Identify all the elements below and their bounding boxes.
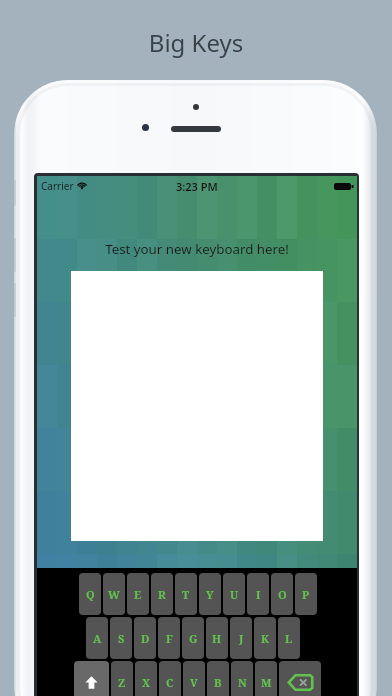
button[interactable]: W: [103, 573, 125, 615]
staticText: W: [108, 587, 120, 602]
button[interactable]: D: [134, 617, 156, 659]
button[interactable]: F: [158, 617, 180, 659]
staticText: R: [158, 587, 166, 602]
staticText: Y: [206, 587, 214, 602]
staticText: L: [285, 631, 293, 646]
staticText: H: [212, 631, 222, 646]
button[interactable]: J: [230, 617, 252, 659]
staticText: P: [302, 587, 310, 602]
staticText: O: [278, 587, 287, 602]
button[interactable]: X: [135, 661, 157, 696]
staticText: S: [118, 631, 125, 646]
staticText: 3:23 PM: [176, 179, 218, 194]
staticText: U: [230, 587, 239, 602]
staticText: Big Keys: [0, 26, 392, 59]
button[interactable]: N: [231, 661, 253, 696]
staticText: J: [239, 631, 244, 646]
button[interactable]: M: [255, 661, 277, 696]
button[interactable]: Z: [111, 661, 133, 696]
button[interactable]: O: [271, 573, 293, 615]
button[interactable]: Q: [79, 573, 101, 615]
button[interactable]: K: [254, 617, 276, 659]
button[interactable]: A: [86, 617, 108, 659]
staticText: D: [141, 631, 150, 646]
staticText: Z: [118, 675, 126, 690]
button[interactable]: V: [183, 661, 205, 696]
staticText: V: [190, 675, 198, 690]
button[interactable]: Shift: [74, 661, 109, 696]
button[interactable]: I: [247, 573, 269, 615]
staticText: A: [93, 631, 102, 646]
staticText: Q: [86, 587, 95, 602]
staticText: Carrier: [41, 179, 74, 193]
staticText: X: [142, 675, 151, 690]
button[interactable]: B: [207, 661, 229, 696]
staticText: Test your new keyboard here!: [37, 240, 357, 258]
staticText: B: [214, 675, 222, 690]
button[interactable]: P: [295, 573, 317, 615]
staticText: E: [134, 587, 142, 602]
button[interactable]: R: [151, 573, 173, 615]
button[interactable]: Y: [199, 573, 221, 615]
button[interactable]: L: [278, 617, 300, 659]
staticText: T: [182, 587, 190, 602]
button[interactable]: S: [110, 617, 132, 659]
button[interactable]: C: [159, 661, 181, 696]
staticText: K: [261, 631, 270, 646]
button[interactable]: T: [175, 573, 197, 615]
button[interactable]: H: [206, 617, 228, 659]
staticText: N: [238, 675, 247, 690]
staticText: I: [256, 587, 261, 602]
button[interactable]: U: [223, 573, 245, 615]
staticText: F: [166, 631, 173, 646]
staticText: C: [166, 675, 174, 690]
button[interactable]: Delete: [279, 661, 321, 696]
staticText: G: [189, 631, 198, 646]
button[interactable]: E: [127, 573, 149, 615]
staticText: M: [261, 675, 272, 690]
button[interactable]: G: [182, 617, 204, 659]
